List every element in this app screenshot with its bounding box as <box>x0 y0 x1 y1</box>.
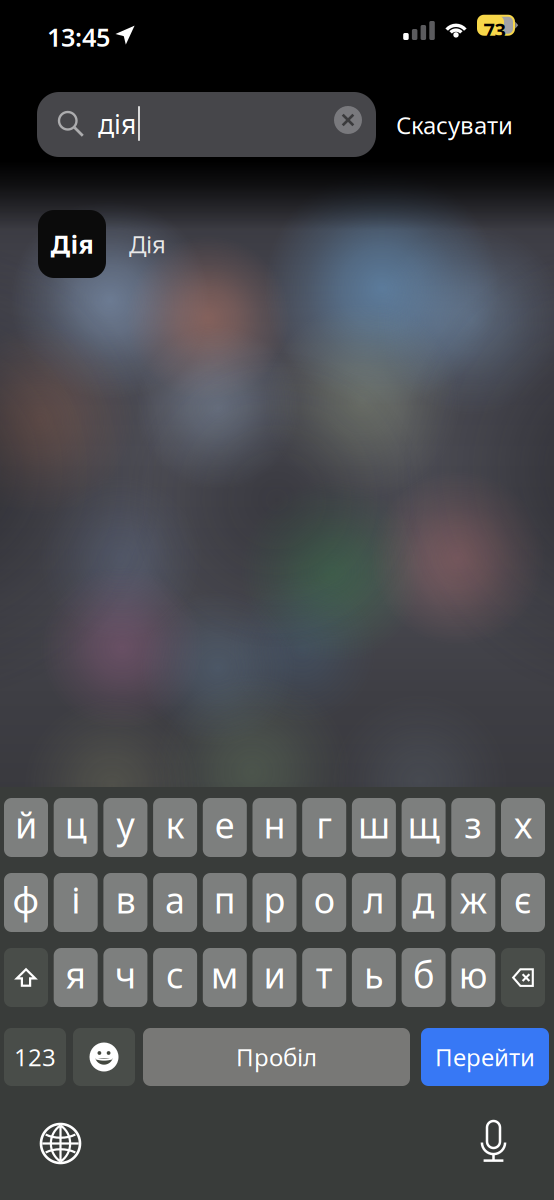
button[interactable]: ж <box>451 873 495 932</box>
staticText: к <box>166 801 185 848</box>
staticText: Пробіл <box>236 1041 317 1073</box>
staticText: щ <box>408 801 440 848</box>
staticText: и <box>263 951 285 998</box>
button[interactable]: п <box>203 873 247 932</box>
button[interactable]: Перейти <box>421 1028 549 1086</box>
button[interactable]: я <box>54 948 98 1007</box>
button[interactable]: ю <box>451 948 495 1007</box>
staticText: ж <box>460 876 487 923</box>
staticText: дія <box>98 106 136 141</box>
button[interactable]: Clear text <box>334 106 362 134</box>
button[interactable]: о <box>302 873 346 932</box>
button[interactable]: Shift <box>4 948 48 1007</box>
staticText: а <box>165 876 185 923</box>
button[interactable]: і <box>54 873 98 932</box>
button[interactable]: е <box>203 798 247 857</box>
button[interactable]: 123 <box>4 1028 66 1086</box>
staticText: п <box>214 876 236 923</box>
button[interactable]: т <box>302 948 346 1007</box>
button[interactable]: ц <box>54 798 98 857</box>
staticText: в <box>115 876 135 923</box>
staticText: є <box>514 876 532 923</box>
button[interactable]: н <box>252 798 296 857</box>
button[interactable]: ь <box>352 948 396 1007</box>
staticText: с <box>166 951 184 998</box>
button[interactable]: г <box>302 798 346 857</box>
staticText: Дія <box>50 227 93 261</box>
staticText: ю <box>459 951 488 998</box>
button[interactable]: л <box>352 873 396 932</box>
staticText: х <box>514 801 532 848</box>
button[interactable]: с <box>153 948 197 1007</box>
staticText: і <box>71 876 80 923</box>
staticText: 123 <box>14 1041 56 1073</box>
button[interactable]: Дія <box>38 210 438 278</box>
staticText: б <box>413 951 434 998</box>
button[interactable]: у <box>103 798 147 857</box>
staticText: 73 <box>483 17 505 43</box>
button[interactable]: щ <box>402 798 446 857</box>
button[interactable]: и <box>252 948 296 1007</box>
button[interactable]: й <box>4 798 48 857</box>
button[interactable]: х <box>501 798 545 857</box>
staticText: д <box>413 876 435 923</box>
staticText: н <box>263 801 285 848</box>
staticText: й <box>15 801 37 848</box>
staticText: г <box>316 801 332 848</box>
button[interactable]: в <box>103 873 147 932</box>
staticText: р <box>263 876 285 923</box>
button[interactable]: є <box>501 873 545 932</box>
staticText: м <box>211 951 239 998</box>
button[interactable]: з <box>451 798 495 857</box>
staticText: Перейти <box>435 1041 535 1073</box>
staticText: ч <box>115 951 136 998</box>
staticText: ь <box>364 951 384 998</box>
button[interactable]: ф <box>4 873 48 932</box>
staticText: о <box>314 876 335 923</box>
button[interactable]: б <box>402 948 446 1007</box>
button[interactable]: Emoji <box>73 1028 135 1086</box>
staticText: я <box>65 951 86 998</box>
staticText: Дія <box>129 228 166 260</box>
button[interactable]: р <box>252 873 296 932</box>
staticText: ц <box>65 801 87 848</box>
staticText: ф <box>12 876 39 923</box>
staticText: т <box>316 951 333 998</box>
button[interactable]: а <box>153 873 197 932</box>
staticText: ш <box>358 801 390 848</box>
button[interactable]: Next keyboard <box>41 1124 80 1163</box>
button[interactable]: д <box>402 873 446 932</box>
staticText: е <box>215 801 235 848</box>
button[interactable]: м <box>203 948 247 1007</box>
staticText: Скасувати <box>396 109 513 141</box>
button[interactable]: Dictation <box>480 1121 507 1162</box>
staticText: л <box>363 876 384 923</box>
button[interactable]: Пробіл <box>143 1028 410 1086</box>
staticText: з <box>464 801 482 848</box>
staticText: у <box>116 801 134 848</box>
staticText: 13:45 <box>47 20 110 54</box>
button[interactable]: к <box>153 798 197 857</box>
button[interactable]: Delete <box>501 948 545 1007</box>
button[interactable]: ш <box>352 798 396 857</box>
button[interactable]: ч <box>103 948 147 1007</box>
button[interactable]: Скасувати <box>396 104 546 146</box>
